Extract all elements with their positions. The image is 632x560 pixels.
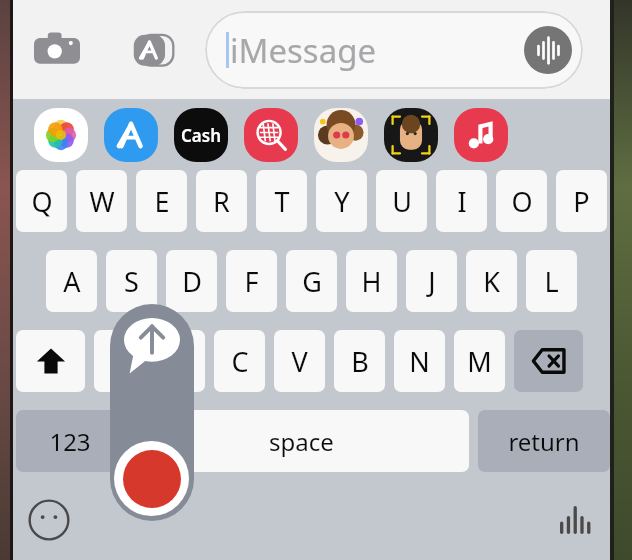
button[interactable]: Record audio message bbox=[524, 26, 572, 74]
button[interactable]: Stop recording bbox=[114, 441, 189, 516]
staticText: H bbox=[361, 263, 382, 300]
button[interactable]: S bbox=[106, 250, 157, 312]
staticText: E bbox=[154, 183, 170, 220]
button[interactable]: T bbox=[256, 170, 307, 232]
button[interactable]: space bbox=[133, 410, 469, 472]
staticText: 123 bbox=[49, 425, 91, 458]
staticText: U bbox=[392, 183, 412, 220]
button[interactable]: D bbox=[166, 250, 217, 312]
button[interactable]: Apps bbox=[125, 21, 183, 79]
staticText: X bbox=[172, 343, 188, 380]
staticText: N bbox=[409, 343, 430, 380]
button[interactable]: K bbox=[466, 250, 517, 312]
button[interactable]: Q bbox=[16, 170, 67, 232]
button[interactable]: N bbox=[394, 330, 445, 392]
button[interactable]: I bbox=[436, 170, 487, 232]
button[interactable]: App bbox=[384, 108, 438, 162]
button[interactable]: P bbox=[556, 170, 607, 232]
button[interactable]: L bbox=[526, 250, 577, 312]
staticText: Cash bbox=[181, 124, 222, 147]
button[interactable]: E bbox=[136, 170, 187, 232]
button[interactable]: App bbox=[34, 108, 88, 162]
button[interactable]: App bbox=[174, 108, 228, 162]
staticText: Y bbox=[334, 183, 350, 220]
button[interactable]: App bbox=[314, 108, 368, 162]
staticText: iMessage bbox=[230, 28, 377, 73]
button[interactable]: H bbox=[346, 250, 397, 312]
button[interactable]: A bbox=[46, 250, 97, 312]
button[interactable]: Send audio message bbox=[110, 304, 194, 521]
button[interactable]: Y bbox=[316, 170, 367, 232]
button[interactable]: Z bbox=[94, 330, 145, 392]
button[interactable]: App bbox=[454, 108, 508, 162]
staticText: S bbox=[124, 263, 139, 300]
staticText: T bbox=[274, 183, 290, 220]
button[interactable]: W bbox=[76, 170, 127, 232]
staticText: L bbox=[544, 263, 559, 300]
button[interactable]: Backspace bbox=[514, 330, 583, 392]
button[interactable]: F bbox=[226, 250, 277, 312]
button[interactable]: C bbox=[214, 330, 265, 392]
button[interactable]: App bbox=[244, 108, 298, 162]
button[interactable]: Camera bbox=[28, 21, 86, 79]
staticText: space bbox=[269, 425, 334, 458]
button[interactable]: R bbox=[196, 170, 247, 232]
staticText: A bbox=[63, 263, 81, 300]
staticText: P bbox=[573, 183, 590, 220]
button[interactable]: Emoji bbox=[27, 498, 71, 542]
staticText: return bbox=[508, 425, 580, 458]
staticText: K bbox=[483, 263, 500, 300]
button[interactable]: O bbox=[496, 170, 547, 232]
staticText: G bbox=[302, 263, 322, 300]
button[interactable]: B bbox=[334, 330, 385, 392]
button[interactable]: Shift bbox=[16, 330, 85, 392]
staticText: V bbox=[291, 343, 308, 380]
staticText: O bbox=[511, 183, 533, 220]
button[interactable]: M bbox=[454, 330, 505, 392]
button[interactable]: J bbox=[406, 250, 457, 312]
button[interactable]: 123 bbox=[16, 410, 124, 472]
button[interactable]: G bbox=[286, 250, 337, 312]
button[interactable]: return bbox=[478, 410, 610, 472]
staticText: C bbox=[231, 343, 249, 380]
staticText: M bbox=[467, 343, 492, 380]
staticText: Z bbox=[112, 343, 128, 380]
button[interactable]: Dictation bbox=[552, 498, 596, 542]
staticText: D bbox=[182, 263, 202, 300]
staticText: F bbox=[244, 263, 259, 300]
staticText: B bbox=[351, 343, 369, 380]
staticText: W bbox=[89, 183, 115, 220]
button[interactable]: X bbox=[154, 330, 205, 392]
staticText: R bbox=[213, 183, 230, 220]
button[interactable]: iMessage bbox=[205, 11, 583, 89]
button[interactable]: V bbox=[274, 330, 325, 392]
staticText: I bbox=[457, 183, 467, 220]
staticText: J bbox=[428, 263, 436, 300]
button[interactable]: App bbox=[104, 108, 158, 162]
button[interactable]: U bbox=[376, 170, 427, 232]
staticText: Q bbox=[31, 183, 53, 220]
